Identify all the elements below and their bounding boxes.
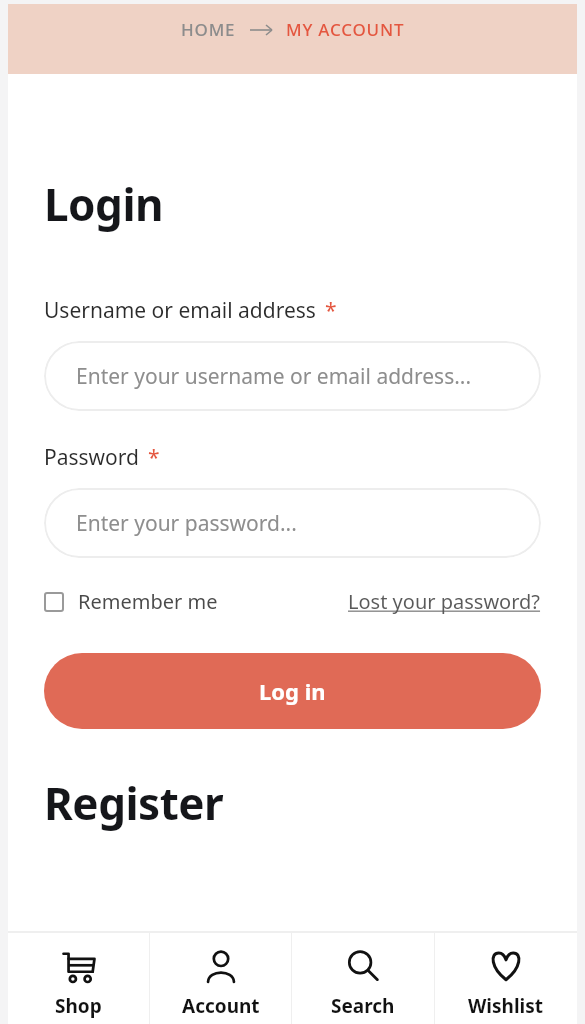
staticText: Enter your password... [76,509,297,538]
staticText: Log in [259,676,326,706]
staticText: Wishlist [468,993,544,1019]
button[interactable]: Shop [8,932,149,1024]
staticText: Lost your password? [348,588,541,615]
button[interactable]: Enter your username or email address... [44,341,541,411]
staticText: Remember me [78,588,218,615]
button[interactable]: Remember me [44,588,218,615]
button[interactable]: Wishlist [435,932,577,1024]
staticText: Register [44,773,224,833]
staticText: * [148,443,160,472]
button[interactable]: Account [150,932,291,1024]
staticText: Shop [55,993,102,1019]
other: Search [345,948,381,984]
button[interactable]: Lost your password? [348,588,541,615]
staticText: * [325,296,337,325]
button[interactable]: Search [292,932,434,1024]
button[interactable]: Log in [44,653,541,729]
staticText: Account [182,993,260,1019]
staticText: Search [331,993,395,1019]
staticText: Enter your username or email address... [76,362,472,391]
staticText: MY ACCOUNT [286,18,405,41]
other: Shop [61,948,97,984]
staticText: Password [44,443,139,472]
other: Wishlist [488,948,524,984]
other: Account [203,948,239,984]
button[interactable]: MY ACCOUNT [286,18,405,41]
staticText: Login [44,174,164,234]
staticText: Username or email address [44,296,316,325]
button[interactable]: Enter your password... [44,488,541,558]
button[interactable]: HOME [181,18,236,41]
staticText: HOME [181,18,236,41]
